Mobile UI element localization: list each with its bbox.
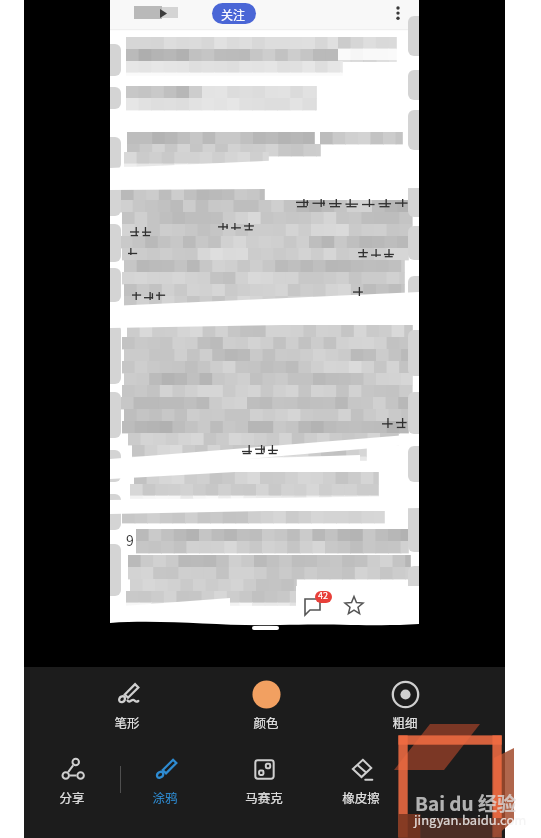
staticText: 分享 <box>59 788 85 806</box>
other: Doodle <box>152 756 179 783</box>
button[interactable]: Pen shape <box>95 681 159 743</box>
button[interactable]: Colour <box>234 681 298 743</box>
staticText: 关注 <box>221 6 246 23</box>
staticText: 42 <box>318 589 328 602</box>
button[interactable]: Thickness <box>373 681 437 743</box>
staticText: 涂鸦 <box>152 788 178 806</box>
other: Eraser <box>348 756 375 783</box>
staticText: 马赛克 <box>245 788 283 806</box>
staticText: Bai du 经验 <box>415 789 516 817</box>
other: Mosaic <box>251 756 278 783</box>
button[interactable]: Mosaic <box>232 756 296 818</box>
staticText: 橡皮擦 <box>342 788 380 806</box>
staticText: 粗细 <box>392 713 418 731</box>
button[interactable]: Doodle <box>133 756 197 818</box>
button[interactable]: Share <box>40 756 104 818</box>
other: Thickness <box>392 681 419 708</box>
button[interactable]: Eraser <box>329 756 393 818</box>
staticText: 笔形 <box>114 713 140 731</box>
other: Share <box>59 756 86 783</box>
staticText: jingyan.baidu.com <box>414 810 527 829</box>
other: Pen shape <box>114 681 141 708</box>
other: Colour <box>253 681 280 708</box>
staticText: 颜色 <box>253 713 279 731</box>
staticText: 9 <box>126 530 134 550</box>
